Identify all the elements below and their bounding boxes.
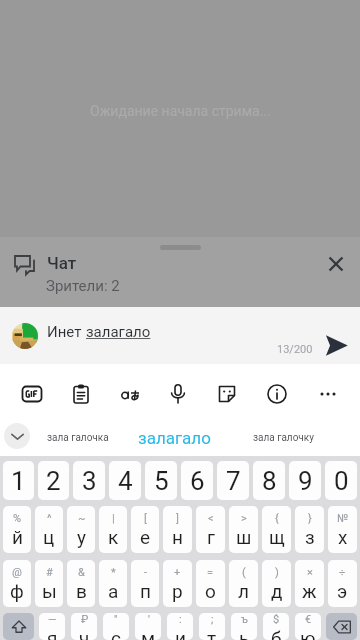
button[interactable]: зала галочка <box>47 419 109 456</box>
staticText: ш <box>236 526 252 548</box>
button[interactable]: ъ <box>231 613 257 640</box>
button[interactable]: > <box>229 506 258 553</box>
button[interactable]: More options <box>312 378 344 410</box>
button[interactable]: [ <box>131 506 159 553</box>
staticText: 1 <box>11 466 26 496</box>
button[interactable]: Change language <box>114 378 146 410</box>
button[interactable]: ) <box>262 560 291 607</box>
staticText: я <box>47 627 58 640</box>
staticText: ч <box>79 627 90 640</box>
staticText: ы <box>42 580 57 602</box>
staticText: м <box>141 627 156 640</box>
button[interactable]: € <box>295 613 321 640</box>
button[interactable]: # <box>35 560 63 607</box>
staticText: у <box>77 526 86 548</box>
staticText: | <box>112 512 115 525</box>
staticText: = <box>207 566 214 579</box>
staticText: 2 <box>46 466 61 496</box>
button[interactable]: ~ <box>67 506 95 553</box>
staticText: т <box>207 627 217 640</box>
button[interactable]: ' <box>135 613 161 640</box>
button[interactable]: 1 <box>3 461 34 500</box>
staticText: с <box>111 627 121 640</box>
button[interactable]: 5 <box>145 461 177 500</box>
button[interactable]: * <box>99 560 127 607</box>
button[interactable]: % <box>3 506 31 553</box>
staticText: ( <box>242 566 246 579</box>
button[interactable]: ÷ <box>328 560 357 607</box>
staticText: к <box>108 526 119 548</box>
button[interactable]: — <box>39 613 65 640</box>
staticText: " <box>114 613 118 626</box>
button[interactable]: ₽ <box>71 613 97 640</box>
button[interactable]: & <box>67 560 95 607</box>
staticText: Инет <box>47 323 86 341</box>
button[interactable]: × <box>295 560 324 607</box>
staticText: ] <box>176 512 179 525</box>
staticText: ^ <box>47 512 52 525</box>
button[interactable]: ] <box>163 506 192 553</box>
staticText: 9 <box>298 466 313 496</box>
staticText: залагало <box>86 323 151 341</box>
button[interactable]: 3 <box>73 461 105 500</box>
staticText: } <box>308 512 312 525</box>
staticText: ; <box>211 613 214 626</box>
button[interactable]: " <box>103 613 129 640</box>
button[interactable]: залагало <box>138 419 211 456</box>
staticText: € <box>305 613 312 626</box>
button[interactable]: Clipboard <box>65 378 97 410</box>
staticText: @ <box>12 566 22 579</box>
button[interactable]: ^ <box>35 506 63 553</box>
button[interactable]: { <box>262 506 291 553</box>
button[interactable]: GIF keyboard <box>16 378 48 410</box>
staticText: ÷ <box>339 566 346 579</box>
button[interactable]: = <box>196 560 225 607</box>
button[interactable]: № <box>328 506 357 553</box>
button[interactable]: Close <box>322 250 350 278</box>
button[interactable]: < <box>196 506 225 553</box>
button[interactable]: - <box>131 560 159 607</box>
staticText: н <box>172 526 183 548</box>
button[interactable]: 6 <box>181 461 213 500</box>
staticText: ь <box>239 627 250 640</box>
staticText: ю <box>300 627 316 640</box>
button[interactable]: $ <box>263 613 289 640</box>
staticText: е <box>140 526 151 548</box>
staticText: & <box>78 566 85 579</box>
button[interactable]: Expand suggestions <box>4 423 30 449</box>
button[interactable]: 7 <box>217 461 249 500</box>
staticText: а <box>108 580 119 602</box>
button[interactable]: | <box>99 506 127 553</box>
staticText: 13/200 <box>277 343 313 356</box>
button[interactable]: Send <box>320 329 352 361</box>
staticText: зала галочку <box>253 432 314 444</box>
button[interactable]: + <box>163 560 192 607</box>
button[interactable]: Backspace <box>326 613 357 640</box>
button[interactable]: 4 <box>109 461 141 500</box>
staticText: ъ <box>241 613 248 626</box>
button[interactable]: Shift <box>3 613 34 640</box>
staticText: ' <box>148 613 150 626</box>
staticText: ц <box>43 526 55 548</box>
staticText: Чат <box>47 253 77 273</box>
button[interactable]: 2 <box>38 461 69 500</box>
button[interactable]: Info <box>261 378 293 410</box>
staticText: < <box>208 512 214 525</box>
button[interactable]: ( <box>229 560 258 607</box>
staticText: * <box>111 566 116 579</box>
button[interactable]: : <box>167 613 193 640</box>
button[interactable]: 8 <box>253 461 285 500</box>
button[interactable]: 9 <box>289 461 321 500</box>
button[interactable]: Voice input <box>162 378 194 410</box>
staticText: Ожидание начала стрима... <box>90 103 271 119</box>
button[interactable]: } <box>295 506 324 553</box>
button[interactable]: @ <box>3 560 31 607</box>
staticText: ж <box>302 580 317 602</box>
button[interactable]: Stickers <box>211 378 243 410</box>
button[interactable]: зала галочку <box>253 419 314 456</box>
button[interactable]: ; <box>199 613 225 640</box>
staticText: й <box>12 526 23 548</box>
staticText: : <box>179 613 182 626</box>
staticText: п <box>140 580 151 602</box>
button[interactable]: 0 <box>325 461 357 500</box>
